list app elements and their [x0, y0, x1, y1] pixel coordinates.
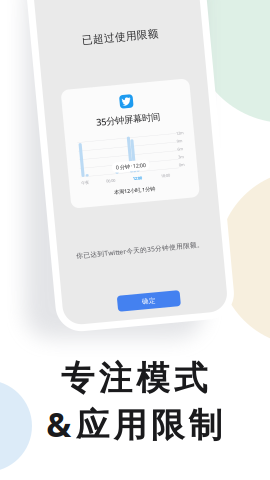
staticText: 06:00 [102, 176, 111, 181]
staticText: 午夜 [77, 176, 85, 181]
staticText: 0 分钟 · 12:00 [113, 163, 143, 170]
staticText: 6m [176, 151, 182, 156]
staticText: &应用限制 [46, 402, 222, 446]
staticText: 专注模式 [61, 358, 207, 399]
staticText: 你已达到Twitter今天的35分钟使用限额。 [66, 246, 194, 255]
staticText: 已超过使用限额 [91, 30, 168, 43]
staticText: 12:00 [129, 176, 138, 181]
staticText: 本周12小时, 1分钟 [109, 187, 150, 194]
button[interactable]: 确定 [102, 294, 165, 310]
staticText: 35分钟屏幕时间 [98, 113, 162, 125]
staticText: 18:00 [157, 176, 166, 181]
staticText: 3m [176, 159, 182, 164]
